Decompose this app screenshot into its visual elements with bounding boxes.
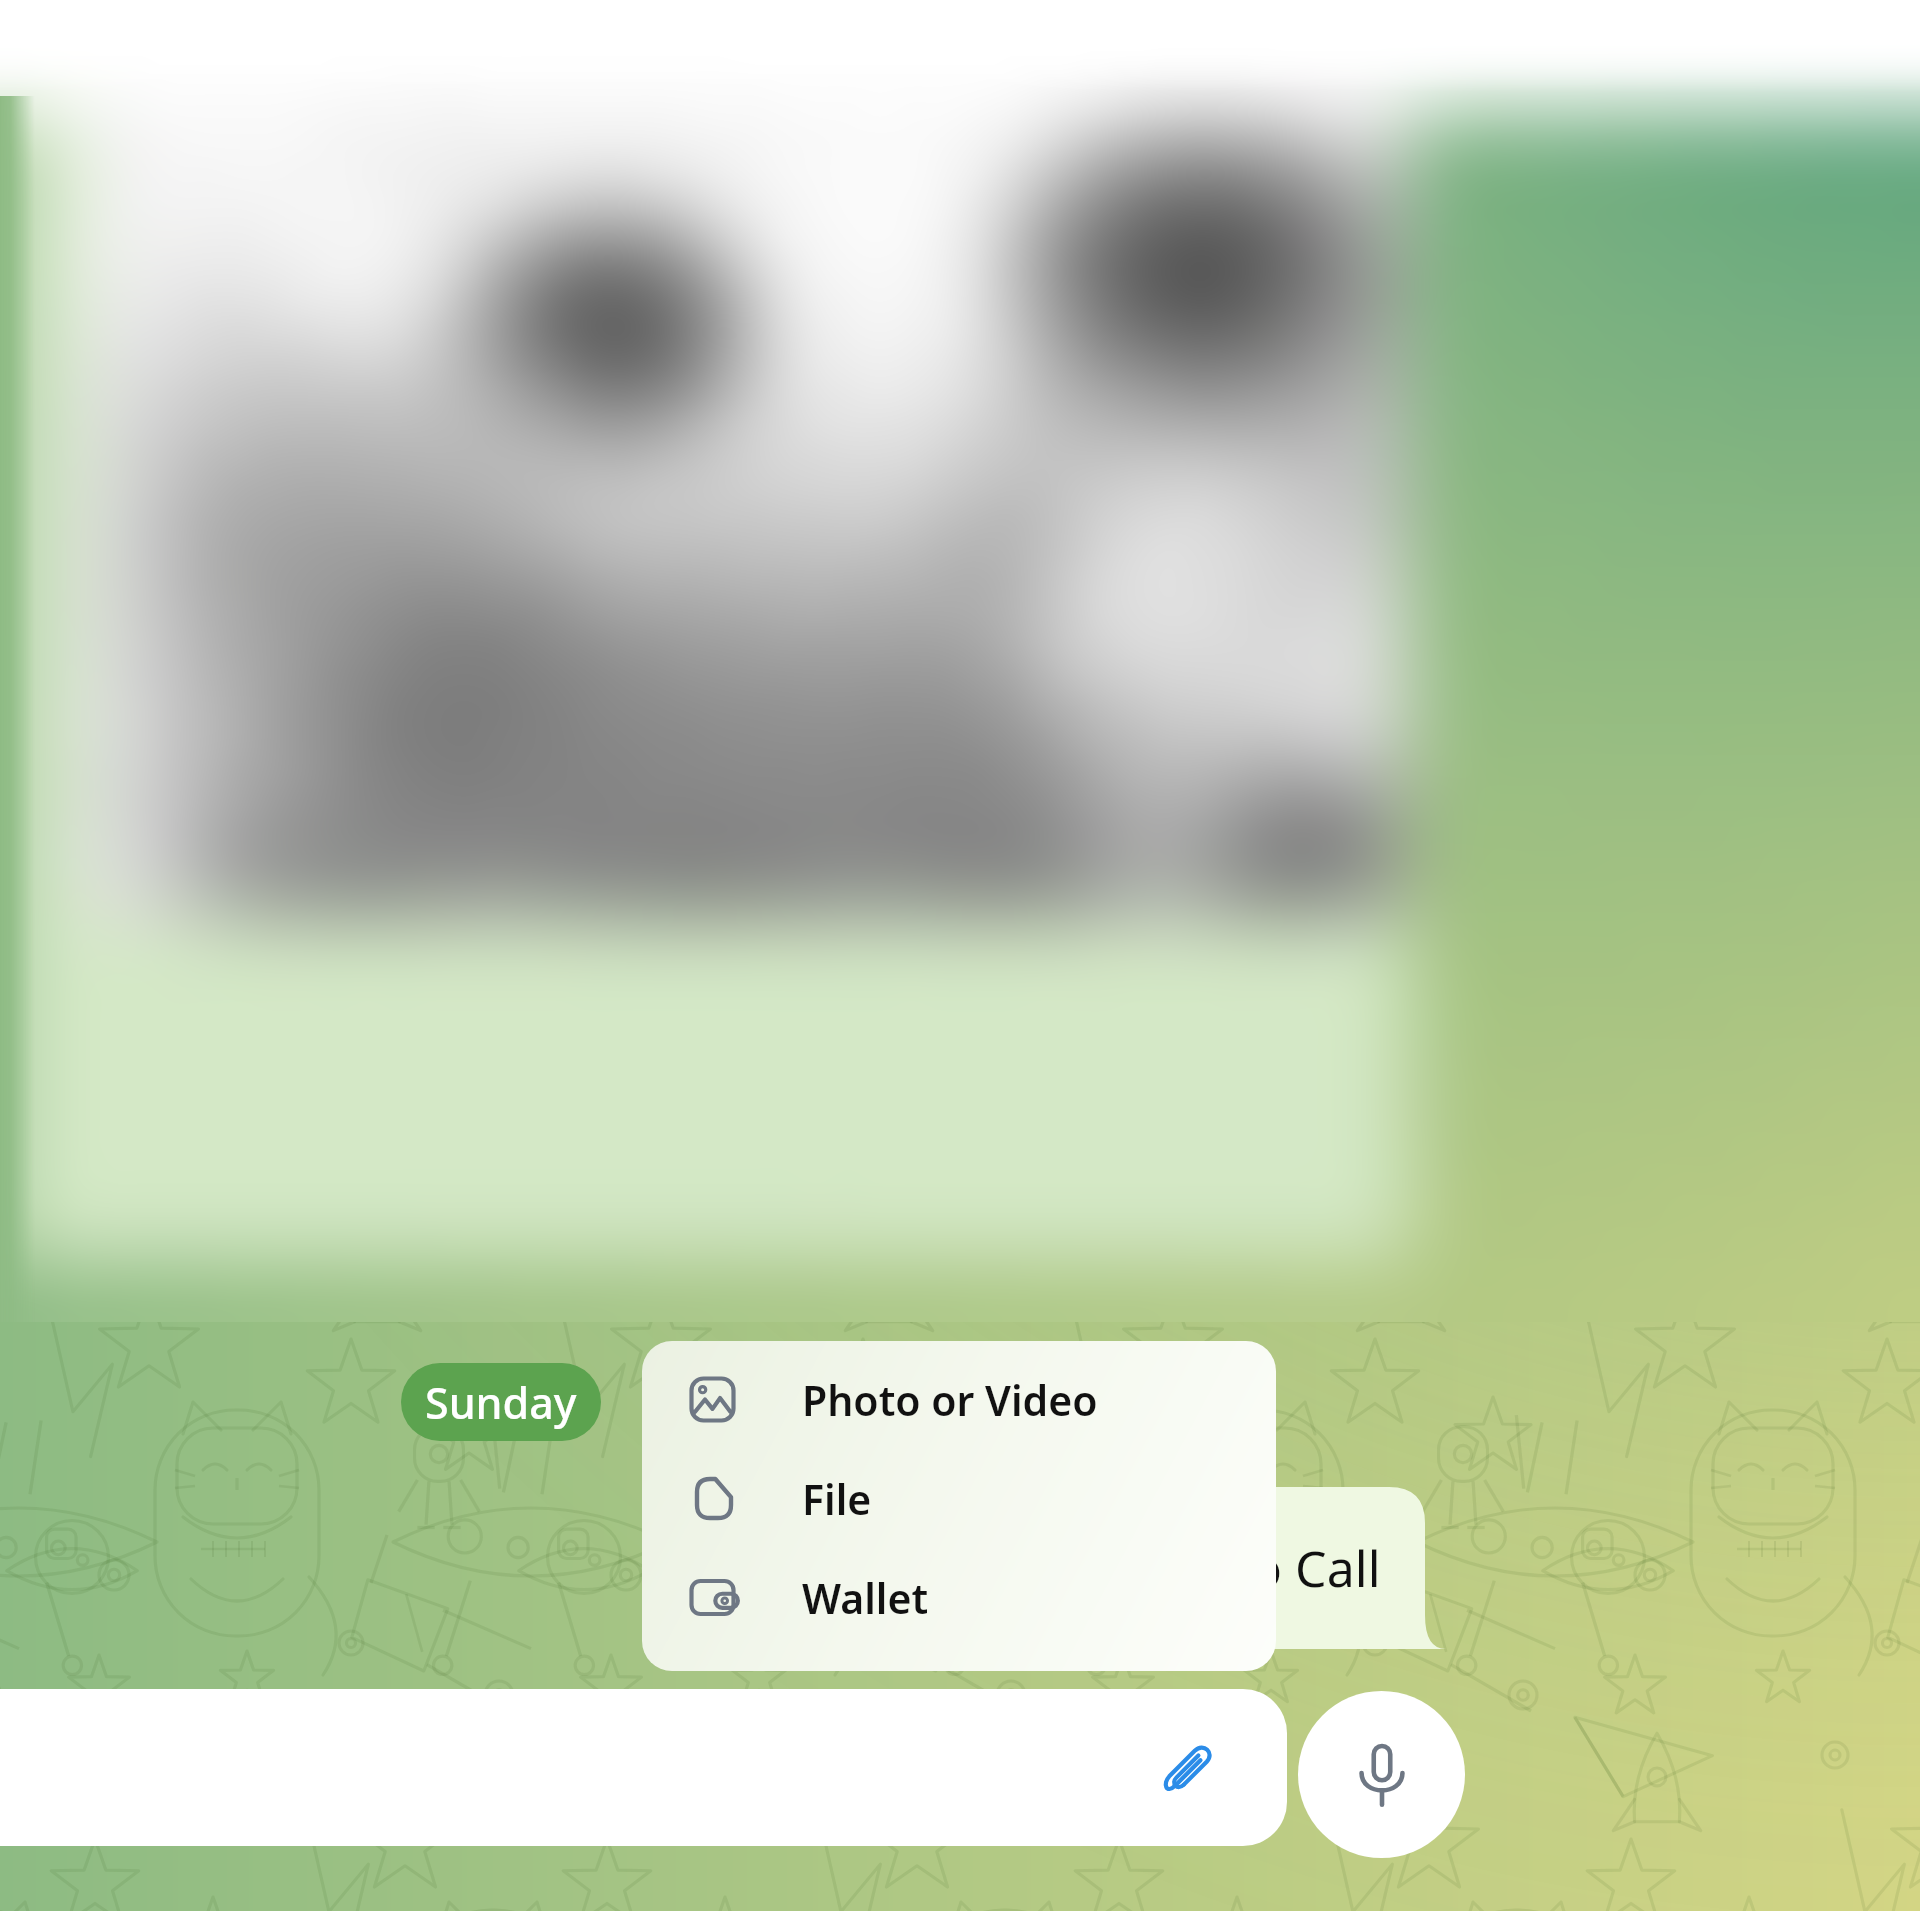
button[interactable]: Attach: [1145, 1725, 1231, 1811]
button[interactable]: Sunday: [425, 1363, 577, 1441]
button[interactable]: Video Call: [1000, 1487, 1446, 1649]
staticText: File: [802, 1471, 872, 1527]
staticText: Wallet: [802, 1570, 929, 1626]
staticText: Video Call: [1150, 1534, 1381, 1602]
button[interactable]: Wallet: [642, 1548, 1276, 1647]
button[interactable]: Attach: [0, 1689, 1287, 1846]
staticText: Photo or Video: [802, 1372, 1098, 1428]
button[interactable]: Record voice message: [1298, 1691, 1465, 1858]
button[interactable]: File: [642, 1449, 1276, 1548]
button[interactable]: Photo or Video: [642, 1350, 1276, 1449]
staticText: Sunday: [425, 1373, 577, 1432]
